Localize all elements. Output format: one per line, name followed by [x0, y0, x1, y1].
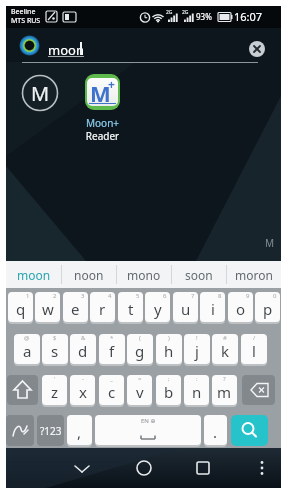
button[interactable]: e	[63, 292, 88, 322]
staticText: 3	[81, 292, 85, 300]
staticText: 4	[108, 292, 112, 300]
button[interactable]: o	[228, 292, 253, 322]
button[interactable]: M	[22, 75, 58, 111]
button[interactable]: ,	[67, 415, 92, 445]
button[interactable]: .	[204, 415, 227, 445]
staticText: 2G	[182, 9, 189, 16]
button[interactable]: m	[212, 375, 237, 405]
staticText: :	[196, 375, 198, 383]
staticText: M	[90, 78, 111, 106]
staticText: Reader	[85, 129, 120, 142]
staticText: 0	[273, 292, 277, 300]
button[interactable]: y	[145, 292, 170, 322]
staticText: 16:07	[234, 9, 263, 24]
button[interactable]: q	[8, 292, 33, 322]
button[interactable]: mono	[116, 261, 171, 288]
button[interactable]: g	[127, 334, 153, 364]
button[interactable]: noon	[61, 261, 116, 288]
button[interactable]: x	[70, 375, 95, 405]
staticText: (	[139, 334, 141, 342]
staticText: k	[221, 341, 230, 361]
staticText: f	[109, 341, 115, 361]
staticText: 2G	[166, 9, 173, 16]
staticText: u	[181, 299, 191, 319]
staticText: @	[24, 334, 30, 342]
staticText: mono	[127, 267, 161, 283]
staticText: moon	[17, 267, 51, 283]
staticText: +	[108, 78, 115, 92]
staticText: ;	[168, 375, 170, 383]
staticText: m	[217, 382, 232, 402]
staticText: =	[138, 375, 142, 383]
button[interactable]: M	[85, 74, 120, 110]
button[interactable]: moon	[6, 261, 61, 288]
staticText: v	[136, 382, 144, 402]
staticText: r	[99, 299, 106, 319]
button[interactable]: moron	[226, 261, 281, 288]
staticText: a	[23, 341, 32, 361]
button[interactable]: u	[173, 292, 198, 322]
staticText: b	[164, 382, 174, 402]
button[interactable]: k	[212, 334, 238, 364]
staticText: $	[53, 334, 57, 342]
button[interactable]	[242, 375, 275, 405]
button[interactable]: soon	[171, 261, 226, 288]
staticText: Beeline	[11, 7, 36, 17]
button[interactable]: ?123	[37, 415, 64, 446]
button[interactable]: EN ⊕	[95, 415, 201, 445]
button[interactable]	[231, 415, 268, 446]
button[interactable]	[129, 448, 159, 488]
button[interactable]: n	[184, 375, 209, 405]
staticText: g	[135, 341, 145, 361]
staticText: c	[108, 382, 116, 402]
staticText: t	[128, 299, 134, 319]
staticText: d	[78, 341, 88, 361]
button[interactable]: z	[42, 375, 67, 405]
button[interactable]	[67, 448, 97, 488]
button[interactable]: v	[127, 375, 152, 405]
staticText: 9	[246, 292, 250, 300]
button[interactable]: f	[99, 334, 125, 364]
staticText: '	[54, 375, 56, 383]
button[interactable]: a	[14, 334, 40, 364]
button[interactable]: s	[42, 334, 68, 364]
staticText: soon	[185, 267, 213, 283]
staticText: #	[223, 334, 227, 342]
staticText: x	[79, 382, 87, 402]
button[interactable]	[254, 448, 270, 488]
button[interactable]: t	[118, 292, 143, 322]
button[interactable]: h	[156, 334, 182, 364]
button[interactable]: c	[99, 375, 124, 405]
staticText: e	[71, 299, 80, 319]
staticText: z	[51, 382, 59, 402]
button[interactable]: j	[184, 334, 210, 364]
button[interactable]: r	[90, 292, 115, 322]
staticText: 7	[191, 292, 195, 300]
button[interactable]	[6, 415, 34, 446]
staticText: MTS RUS	[11, 16, 41, 26]
staticText: 5	[136, 292, 140, 300]
button[interactable]: i	[200, 292, 225, 322]
button[interactable]: w	[35, 292, 60, 322]
button[interactable]: b	[156, 375, 181, 405]
button[interactable]: p	[255, 292, 280, 322]
staticText: moron	[235, 267, 273, 283]
staticText: 93%	[196, 11, 212, 22]
staticText: 2	[53, 292, 57, 300]
button[interactable]	[7, 375, 38, 405]
staticText: ?123	[40, 424, 62, 438]
button[interactable]: d	[70, 334, 96, 364]
staticText: ?	[223, 375, 226, 383]
staticText: y	[154, 299, 162, 319]
staticText: 6	[163, 292, 167, 300]
staticText: i	[211, 299, 215, 319]
staticText: *	[110, 334, 114, 342]
staticText: l	[252, 341, 256, 361]
staticText: )	[168, 334, 170, 342]
staticText: !	[196, 334, 198, 342]
button[interactable]	[188, 448, 218, 488]
button[interactable]	[249, 41, 265, 57]
button[interactable]: l	[241, 334, 267, 364]
staticText: p	[263, 299, 273, 319]
staticText: 1	[26, 292, 30, 300]
